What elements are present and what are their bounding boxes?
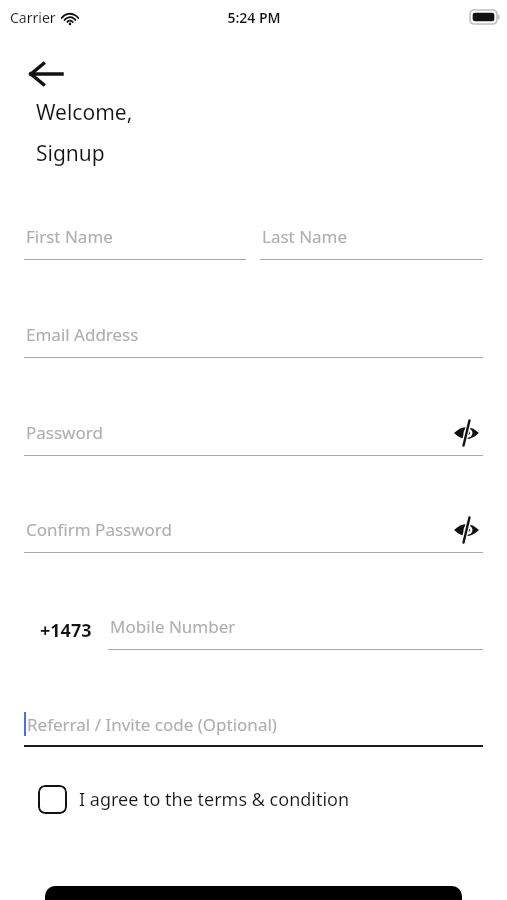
button[interactable]: Email Address: [24, 318, 483, 358]
staticText: Confirm Password: [26, 518, 172, 541]
staticText: +1473: [40, 618, 92, 643]
staticText: I agree to the terms & condition: [79, 787, 350, 812]
button[interactable]: Password: [24, 416, 483, 456]
staticText: Signup: [36, 139, 105, 168]
staticText: Referral / Invite code (Optional): [27, 713, 277, 736]
button[interactable]: Mobile Number: [108, 610, 483, 650]
staticText: First Name: [26, 225, 113, 248]
staticText: 5:24 PM: [227, 8, 281, 27]
button[interactable]: +1473: [24, 610, 108, 650]
staticText: Welcome,: [36, 98, 133, 127]
staticText: Mobile Number: [110, 615, 236, 638]
button[interactable]: First Name: [24, 220, 246, 260]
staticText: Password: [26, 421, 103, 444]
button[interactable]: Back: [24, 52, 68, 96]
button[interactable]: Show password: [449, 416, 483, 450]
button[interactable]: Referral / Invite code (Optional): [24, 707, 483, 747]
staticText: Last Name: [262, 225, 348, 248]
button[interactable]: I agree to the terms & condition: [38, 785, 350, 814]
button[interactable]: Show confirm password: [449, 513, 483, 547]
staticText: Carrier: [10, 8, 56, 27]
button[interactable]: Last Name: [260, 220, 483, 260]
button[interactable]: [45, 886, 462, 900]
staticText: Email Address: [26, 323, 139, 346]
button[interactable]: Confirm Password: [24, 513, 483, 553]
